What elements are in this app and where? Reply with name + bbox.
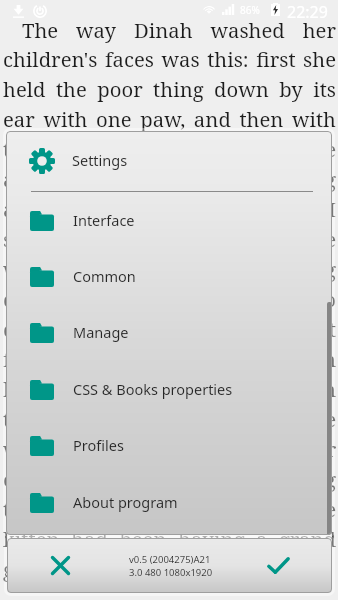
- staticText: Manage: [73, 322, 129, 342]
- staticText: 3.0 480 1080x1920: [129, 566, 213, 579]
- button[interactable]: Confirm: [252, 538, 304, 593]
- staticText: Profiles: [73, 435, 124, 455]
- staticText: Common: [73, 266, 136, 286]
- staticText: CSS & Books properties: [73, 379, 233, 399]
- staticText: Settings: [72, 150, 128, 170]
- staticText: v0.5 (2004275)A21: [129, 553, 211, 566]
- button[interactable]: Interface: [6, 193, 332, 249]
- staticText: 22:29: [287, 1, 328, 19]
- button[interactable]: About program: [6, 475, 332, 531]
- staticText: About program: [73, 492, 178, 512]
- button[interactable]: CSS & Books properties: [6, 362, 332, 418]
- button[interactable]: Common: [6, 249, 332, 305]
- button[interactable]: Profiles: [6, 418, 332, 474]
- staticText: Interface: [73, 210, 135, 230]
- button[interactable]: Settings: [6, 131, 332, 191]
- staticText: The way Dinah washed her children's face…: [3, 16, 336, 583]
- button[interactable]: Cancel: [34, 538, 86, 593]
- staticText: 86%: [240, 3, 260, 17]
- button[interactable]: Manage: [6, 305, 332, 361]
